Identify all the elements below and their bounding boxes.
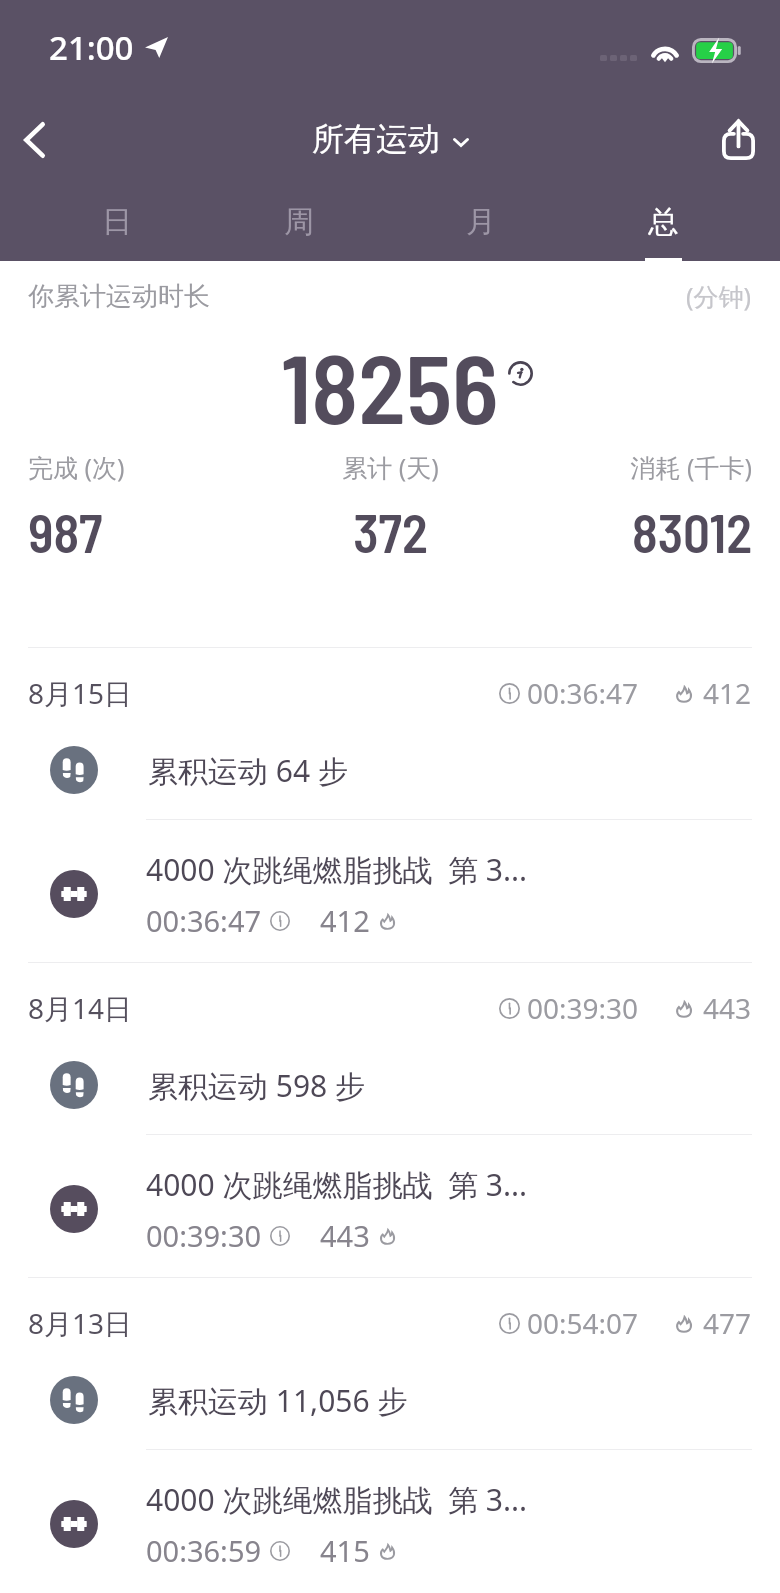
staticText: 累积运动 598 步 [148,1065,366,1106]
staticText: 21:00 [49,25,134,70]
staticText: 412 [320,901,370,940]
staticText: 443 [703,989,752,1027]
button[interactable]: 累积运动 598 步 [0,1037,780,1133]
button[interactable]: 4000 次跳绳燃脂挑战 第 3... [0,839,780,949]
staticText: 987 [28,500,270,564]
staticText: 443 [320,1216,370,1255]
button[interactable]: 4000 次跳绳燃脂挑战 第 3... [0,1469,780,1579]
button[interactable]: 4000 次跳绳燃脂挑战 第 3... [0,1154,780,1264]
button[interactable]: Share [706,108,770,172]
staticText: 412 [703,674,752,712]
staticText: 你累计运动时长 [28,280,210,313]
staticText: 月 [466,203,496,241]
staticText: 所有运动 [312,119,440,159]
staticText: 8月13日 [28,1304,133,1342]
staticText: 4000 次跳绳燃脂挑战 第 3... [146,849,528,890]
staticText: 累积运动 64 步 [148,750,348,791]
staticText: 00:36:59 [146,1531,262,1570]
staticText: 累积运动 11,056 步 [148,1380,408,1421]
button[interactable]: 所有运动 [312,119,469,159]
staticText: 消耗 (千卡) [511,450,752,484]
staticText: 00:36:47 [527,674,639,712]
button[interactable]: 总 [572,185,754,261]
button[interactable]: 周 [208,185,390,261]
staticText: 372 [270,500,511,564]
staticText: 8月14日 [28,989,133,1027]
staticText: 00:54:07 [527,1304,639,1342]
button[interactable]: 日 [26,185,208,261]
staticText: 总 [648,203,678,241]
button[interactable]: 累积运动 64 步 [0,722,780,818]
staticText: 477 [703,1304,752,1342]
staticText: 累计 (天) [270,450,511,484]
staticText: 83012 [511,500,752,564]
staticText: 18256 [281,327,499,443]
button[interactable]: Info [505,358,535,388]
staticText: 4000 次跳绳燃脂挑战 第 3... [146,1164,528,1205]
button[interactable]: 月 [390,185,572,261]
staticText: 415 [320,1531,370,1570]
staticText: 00:39:30 [527,989,639,1027]
staticText: 00:36:47 [146,901,262,940]
staticText: 完成 (次) [28,450,270,484]
button[interactable]: 累积运动 11,056 步 [0,1352,780,1448]
staticText: 日 [102,203,132,241]
staticText: 00:39:30 [146,1216,262,1255]
staticText: 周 [284,203,314,241]
staticText: (分钟) [686,279,752,313]
staticText: 8月15日 [28,674,133,712]
staticText: 4000 次跳绳燃脂挑战 第 3... [146,1479,528,1520]
button[interactable]: Back [2,108,66,172]
